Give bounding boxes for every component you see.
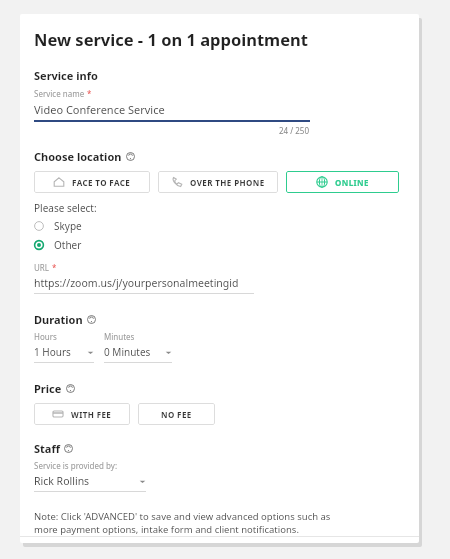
button[interactable]: Rick Rollins — [34, 474, 146, 492]
button[interactable]: Minutes — [104, 331, 172, 363]
staticText: Skype — [54, 219, 82, 233]
staticText: Service is provided by: — [34, 460, 118, 471]
button[interactable]: ONLINE — [286, 171, 399, 193]
staticText: Duration — [34, 312, 83, 327]
staticText: NO FEE — [161, 409, 192, 420]
staticText: OVER THE PHONE — [190, 177, 265, 188]
staticText: 24 / 250 — [279, 125, 310, 136]
other: Open dropdown — [165, 349, 172, 356]
staticText: FACE TO FACE — [72, 177, 131, 188]
button[interactable]: WITH FEE — [34, 403, 130, 425]
staticText: Service info — [34, 68, 98, 83]
staticText: Other — [54, 238, 82, 252]
staticText: Choose location — [34, 149, 122, 164]
button[interactable]: Other — [34, 238, 88, 252]
staticText: * — [87, 88, 92, 99]
button[interactable]: Skype — [34, 219, 88, 233]
staticText: 0 Minutes — [104, 345, 151, 359]
staticText: https://zoom.us/j/yourpersonalmeetingid — [34, 276, 239, 290]
staticText: Please select: — [34, 201, 97, 215]
button[interactable]: Hours — [34, 331, 94, 363]
staticText: URL — [34, 262, 50, 273]
staticText: Rick Rollins — [34, 474, 90, 488]
staticText: Note: Click 'ADVANCED' to save and view … — [34, 510, 339, 536]
staticText: Minutes — [104, 331, 135, 342]
other: Open dropdown — [139, 478, 146, 485]
button[interactable]: NO FEE — [138, 403, 215, 425]
staticText: WITH FEE — [71, 409, 112, 420]
staticText: Service name — [34, 88, 85, 99]
staticText: Price — [34, 381, 62, 396]
staticText: Staff — [34, 441, 60, 456]
button[interactable]: OVER THE PHONE — [158, 171, 278, 193]
button[interactable]: FACE TO FACE — [34, 171, 150, 193]
staticText: 1 Hours — [34, 345, 71, 359]
staticText: ONLINE — [335, 177, 369, 188]
staticText: New service - 1 on 1 appointment — [34, 28, 308, 50]
staticText: * — [52, 262, 57, 273]
other: Open dropdown — [87, 349, 94, 356]
staticText: Hours — [34, 331, 57, 342]
staticText: Video Conference Service — [34, 102, 165, 117]
